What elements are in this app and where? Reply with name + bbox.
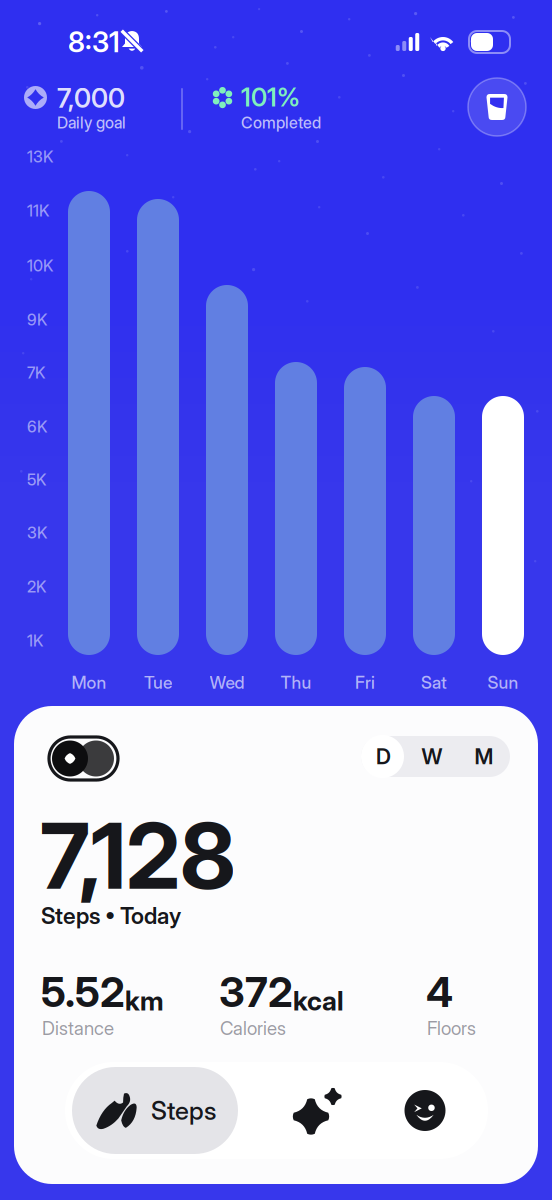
staticText: Steps bbox=[151, 1095, 216, 1126]
button[interactable]: Switch profile bbox=[49, 737, 118, 780]
staticText: Thu bbox=[280, 672, 311, 693]
staticText: 11K bbox=[27, 201, 49, 220]
staticText: 7,000 bbox=[57, 82, 125, 114]
button[interactable]: Profile bbox=[385, 1062, 465, 1159]
staticText: Calories bbox=[220, 1017, 286, 1040]
staticText: M bbox=[474, 744, 493, 769]
button[interactable]: W bbox=[406, 736, 458, 777]
staticText: Floors bbox=[427, 1017, 476, 1040]
button[interactable]: M bbox=[458, 736, 510, 777]
button[interactable]: Insights bbox=[277, 1062, 357, 1159]
staticText: 9K bbox=[27, 310, 47, 329]
staticText: 372 bbox=[219, 967, 293, 1017]
staticText: 13K bbox=[27, 147, 53, 166]
staticText: 6K bbox=[27, 417, 47, 436]
staticText: 4 bbox=[426, 967, 453, 1017]
staticText: Completed bbox=[241, 113, 321, 132]
staticText: Mon bbox=[71, 672, 106, 693]
staticText: W bbox=[421, 744, 442, 769]
staticText: 5.52 bbox=[41, 967, 125, 1017]
staticText: Sun bbox=[487, 672, 518, 693]
staticText: Wed bbox=[209, 672, 244, 693]
staticText: kcal bbox=[293, 985, 344, 1017]
staticText: 1K bbox=[27, 631, 43, 650]
staticText: Sat bbox=[421, 672, 447, 693]
staticText: Tue bbox=[144, 672, 172, 693]
staticText: Steps • Today bbox=[41, 902, 181, 929]
staticText: 101% bbox=[241, 82, 300, 113]
staticText: 7,128 bbox=[40, 801, 236, 911]
button[interactable]: D bbox=[361, 736, 406, 777]
staticText: 5K bbox=[27, 470, 46, 489]
staticText: 10K bbox=[27, 256, 53, 275]
staticText: Daily goal bbox=[57, 113, 126, 132]
staticText: 3K bbox=[27, 523, 47, 542]
staticText: Fri bbox=[355, 672, 375, 693]
button[interactable]: Steps bbox=[72, 1067, 238, 1154]
staticText: D bbox=[376, 744, 391, 769]
staticText: 8:31 bbox=[68, 25, 120, 59]
staticText: 2K bbox=[27, 577, 46, 596]
button[interactable]: Log water bbox=[468, 78, 526, 136]
staticText: Distance bbox=[42, 1017, 114, 1040]
staticText: 7K bbox=[27, 363, 45, 382]
staticText: km bbox=[125, 985, 164, 1017]
